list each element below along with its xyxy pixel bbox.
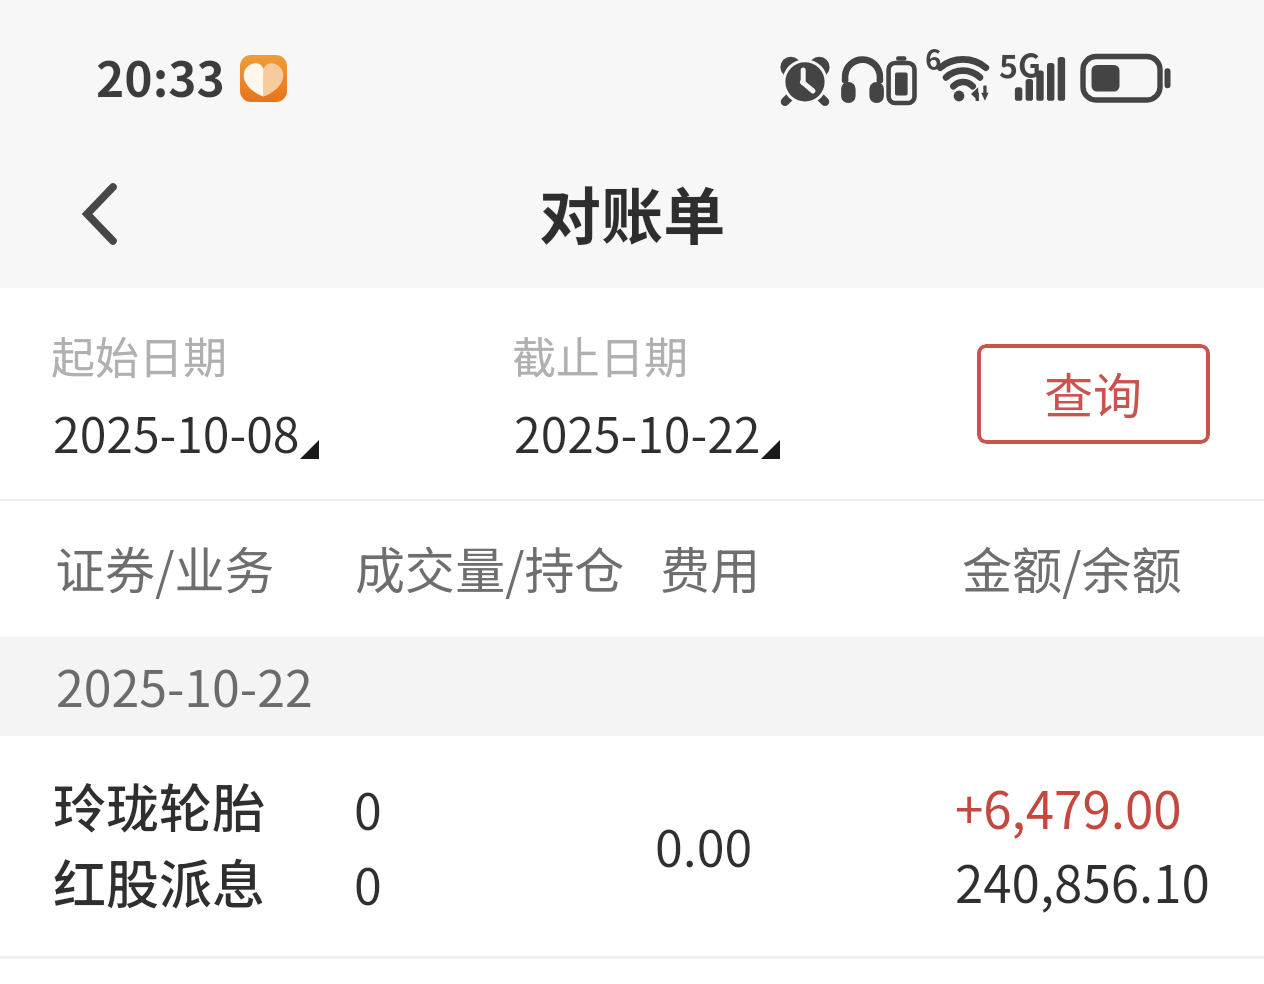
staticText: 起始日期 — [51, 323, 227, 387]
staticText: 240,856.10 — [955, 844, 1210, 918]
staticText: 金额/余额 — [962, 531, 1182, 603]
staticText: 证券/业务 — [55, 531, 275, 603]
button[interactable]: 起始日期 — [51, 318, 341, 468]
staticText: 0.00 — [655, 809, 753, 881]
staticText: 2025-10-22 — [514, 397, 761, 467]
button[interactable]: 玲珑轮胎 — [0, 737, 1264, 956]
button[interactable]: 截止日期 — [512, 318, 802, 468]
staticText: 截止日期 — [512, 323, 688, 387]
staticText: 成交量/持仓 — [355, 531, 625, 603]
staticText: 查询 — [1044, 357, 1143, 428]
button[interactable]: Back — [48, 160, 152, 268]
staticText: 2025-10-22 — [56, 649, 313, 721]
staticText: 20:33 — [96, 41, 225, 111]
staticText: 玲珑轮胎 — [53, 767, 265, 844]
staticText: 红股派息 — [53, 843, 265, 920]
button[interactable]: 查询 — [977, 344, 1210, 444]
staticText: 5G — [999, 41, 1041, 87]
staticText: 费用 — [660, 531, 760, 603]
staticText: +6,479.00 — [955, 770, 1182, 844]
staticText: 6 — [925, 38, 942, 79]
staticText: 0 — [354, 847, 382, 919]
staticText: 0 — [354, 772, 382, 844]
staticText: 对账单 — [539, 167, 726, 257]
staticText: 2025-10-08 — [53, 397, 300, 467]
